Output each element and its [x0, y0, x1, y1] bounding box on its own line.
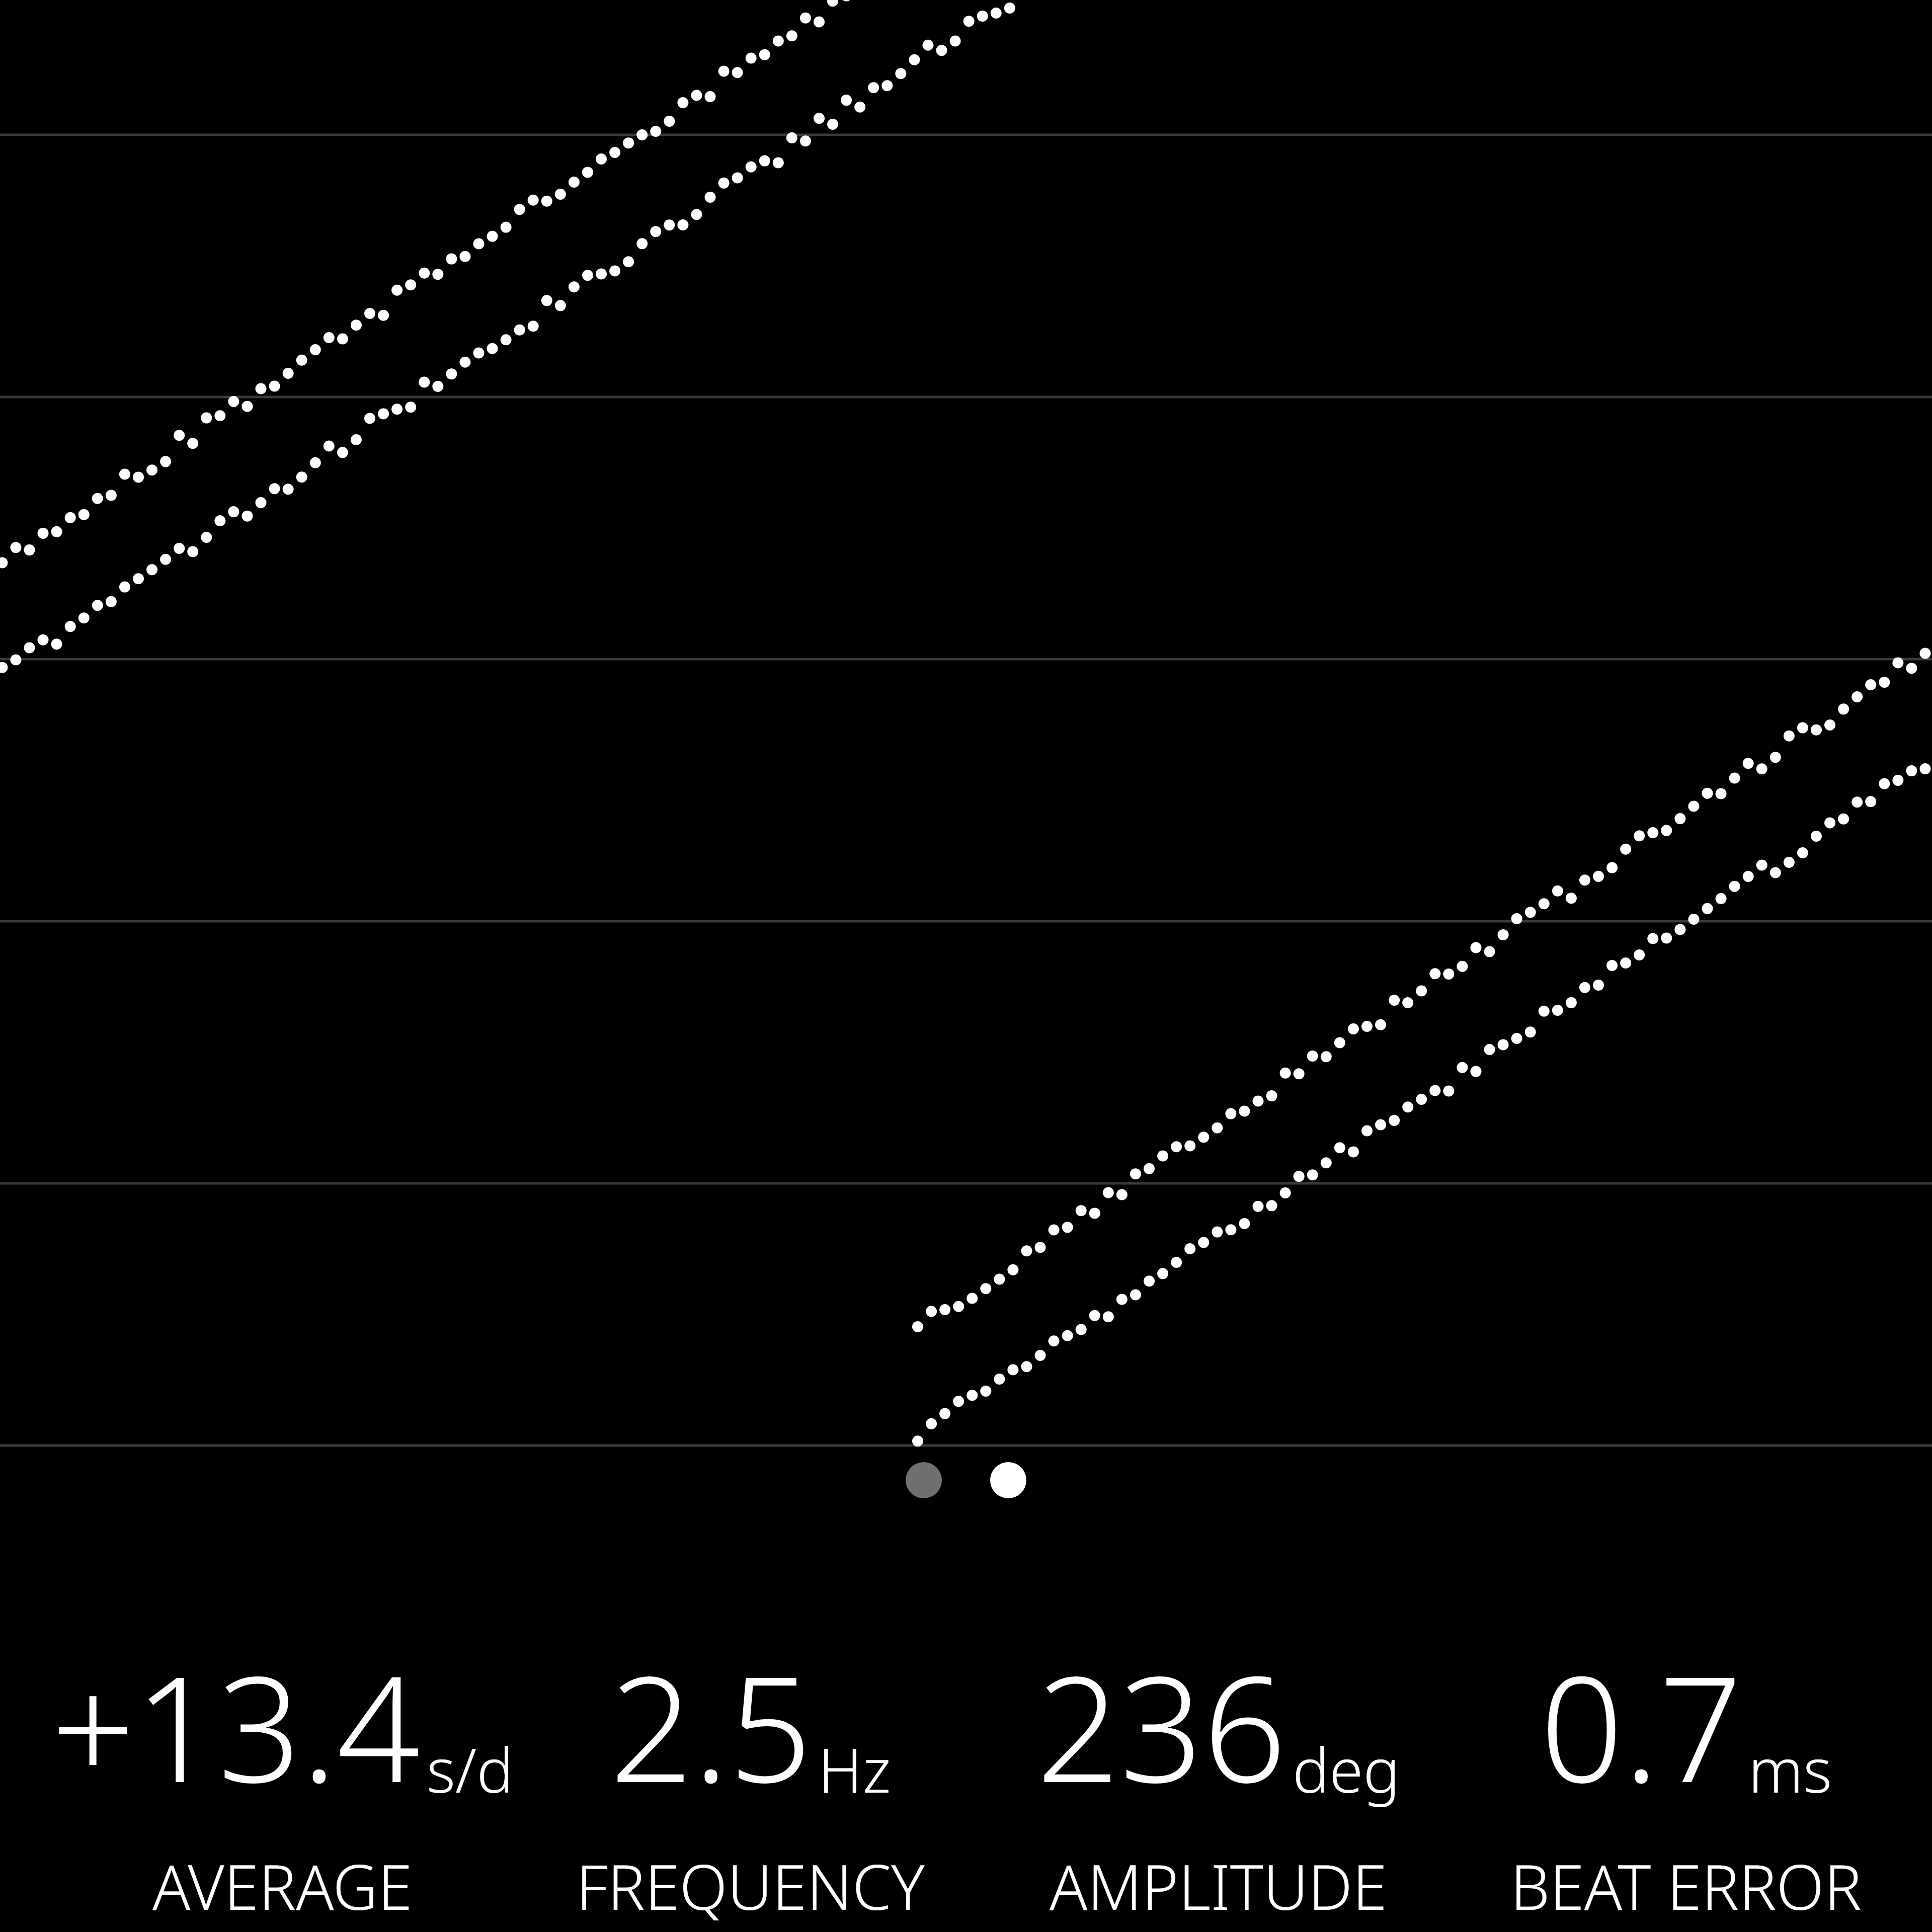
staticText: Hz	[818, 1727, 891, 1811]
staticText: 0.7	[1540, 1626, 1742, 1825]
staticText: AMPLITUDE	[1050, 1843, 1387, 1928]
button[interactable]: 0.7	[1452, 1626, 1920, 1928]
staticText: BEAT ERROR	[1510, 1843, 1862, 1928]
staticText: 236	[1036, 1626, 1286, 1825]
staticText: s/d	[427, 1727, 514, 1811]
staticText: +13.4	[51, 1626, 421, 1825]
staticText: AVERAGE	[152, 1843, 413, 1928]
staticText: FREQUENCY	[576, 1843, 925, 1928]
button[interactable]: Page 2 of 2	[906, 1462, 1026, 1498]
button[interactable]: 236	[984, 1626, 1452, 1928]
staticText: deg	[1293, 1727, 1400, 1811]
button[interactable]: Rate trace graph	[0, 0, 1932, 1474]
button[interactable]: +13.4	[48, 1626, 516, 1928]
staticText: 2.5	[610, 1626, 812, 1825]
button[interactable]: 2.5	[516, 1626, 984, 1928]
staticText: ms	[1748, 1727, 1832, 1811]
